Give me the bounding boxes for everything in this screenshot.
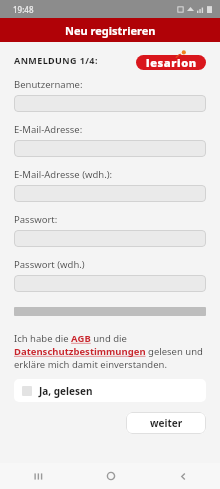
button[interactable]: Recent apps — [0, 463, 74, 489]
staticText: lesarion — [146, 55, 197, 70]
button[interactable] — [14, 275, 206, 292]
staticText: Passwort: — [14, 213, 58, 226]
staticText: Ich habe die AGB und die Datenschutzbest… — [14, 332, 203, 371]
staticText: Neu registrieren — [65, 23, 156, 38]
button[interactable]: Ich habe die AGB und die Datenschutzbest… — [14, 332, 206, 371]
button[interactable] — [14, 230, 206, 247]
button[interactable]: weiter — [126, 412, 206, 434]
staticText: 19:48 — [13, 4, 34, 15]
staticText: E-Mail-Adresse: — [14, 123, 83, 136]
staticText: Benutzername: — [14, 78, 83, 91]
staticText: Passwort (wdh.) — [14, 258, 85, 271]
button[interactable]: Back — [147, 463, 220, 489]
staticText: weiter — [150, 416, 183, 430]
button[interactable]: Home — [74, 463, 147, 489]
staticText: Ja, gelesen — [39, 384, 93, 398]
staticText: E-Mail-Adresse (wdh.): — [14, 168, 113, 181]
button[interactable]: Ja, gelesen — [14, 379, 206, 402]
button[interactable] — [14, 140, 206, 157]
button[interactable] — [14, 95, 206, 112]
button[interactable] — [14, 185, 206, 202]
staticText: ANMELDUNG 1/4: — [14, 54, 98, 66]
